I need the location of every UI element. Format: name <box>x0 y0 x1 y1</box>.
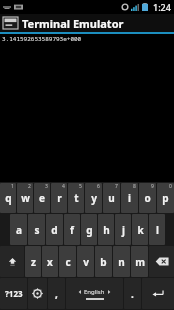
staticText: o <box>144 191 151 205</box>
staticText: 5 <box>79 183 82 190</box>
staticText: m <box>135 255 145 269</box>
staticText: x <box>47 255 53 269</box>
staticText: 3.141592653589793e+000 <box>2 35 82 43</box>
staticText: r <box>57 191 62 205</box>
staticText: ?123 <box>5 288 23 299</box>
staticText: l <box>156 223 159 237</box>
staticText: v <box>83 255 89 269</box>
button[interactable]: g <box>81 214 97 245</box>
staticText: e <box>39 191 45 205</box>
button[interactable]: r <box>51 183 67 213</box>
button[interactable]: w <box>17 183 33 213</box>
staticText: y <box>91 191 97 205</box>
staticText: 4 <box>62 183 65 190</box>
staticText: b <box>100 255 107 269</box>
staticText: g <box>86 223 93 237</box>
button[interactable]: f <box>64 214 80 245</box>
staticText: n <box>118 255 125 269</box>
button[interactable]: . <box>124 278 141 309</box>
button[interactable]: English <box>66 278 123 309</box>
button[interactable]: Terminal Emulator icon <box>0 14 174 32</box>
button[interactable]: , <box>48 278 65 309</box>
button[interactable]: ?123 <box>0 278 27 309</box>
button[interactable]: o <box>139 183 156 213</box>
staticText: 3 <box>45 183 48 190</box>
staticText: s <box>34 223 40 237</box>
staticText: 1 <box>11 183 14 190</box>
button[interactable]: q <box>0 183 16 213</box>
button[interactable]: x <box>42 246 58 277</box>
button[interactable]: y <box>85 183 102 213</box>
staticText: English <box>84 288 105 296</box>
button[interactable]: e <box>34 183 50 213</box>
staticText: , <box>55 287 58 301</box>
button[interactable]: Backspace <box>149 246 174 277</box>
staticText: 0 <box>169 183 172 190</box>
button[interactable]: a <box>10 214 27 245</box>
staticText: f <box>70 223 74 237</box>
staticText: j <box>122 223 125 237</box>
button[interactable]: u <box>103 183 120 213</box>
staticText: a <box>16 223 22 237</box>
staticText: z <box>31 255 36 269</box>
staticText: 7 <box>115 183 118 190</box>
button[interactable]: h <box>98 214 114 245</box>
button[interactable]: l <box>149 214 165 245</box>
button[interactable]: Shift <box>0 246 24 277</box>
staticText: u <box>108 191 115 205</box>
staticText: k <box>137 223 144 237</box>
staticText: p <box>162 191 169 205</box>
staticText: i <box>128 191 131 205</box>
button[interactable]: n <box>113 246 130 277</box>
button[interactable]: k <box>132 214 148 245</box>
button[interactable]: Settings <box>28 278 47 309</box>
staticText: t <box>74 191 79 205</box>
button[interactable]: s <box>28 214 45 245</box>
button[interactable]: b <box>95 246 112 277</box>
staticText: w <box>21 191 30 205</box>
staticText: c <box>65 255 71 269</box>
staticText: h <box>103 223 110 237</box>
staticText: q <box>5 191 12 205</box>
staticText: d <box>51 223 58 237</box>
button[interactable]: v <box>77 246 94 277</box>
staticText: . <box>131 287 134 301</box>
staticText: 1:24 <box>153 1 171 13</box>
button[interactable]: i <box>121 183 138 213</box>
other: Terminal Emulator icon <box>3 17 18 29</box>
button[interactable]: p <box>157 183 174 213</box>
button[interactable]: 3.141592653589793e+000 <box>0 34 174 182</box>
staticText: 8 <box>133 183 136 190</box>
button[interactable]: j <box>115 214 131 245</box>
staticText: 6 <box>97 183 100 190</box>
staticText: 2 <box>28 183 31 190</box>
button[interactable]: Enter <box>142 278 174 309</box>
button[interactable]: d <box>46 214 63 245</box>
button[interactable]: z <box>25 246 41 277</box>
button[interactable]: c <box>59 246 76 277</box>
button[interactable]: t <box>68 183 84 213</box>
staticText: 9 <box>151 183 154 190</box>
staticText: Terminal Emulator <box>22 16 124 31</box>
button[interactable]: m <box>131 246 148 277</box>
